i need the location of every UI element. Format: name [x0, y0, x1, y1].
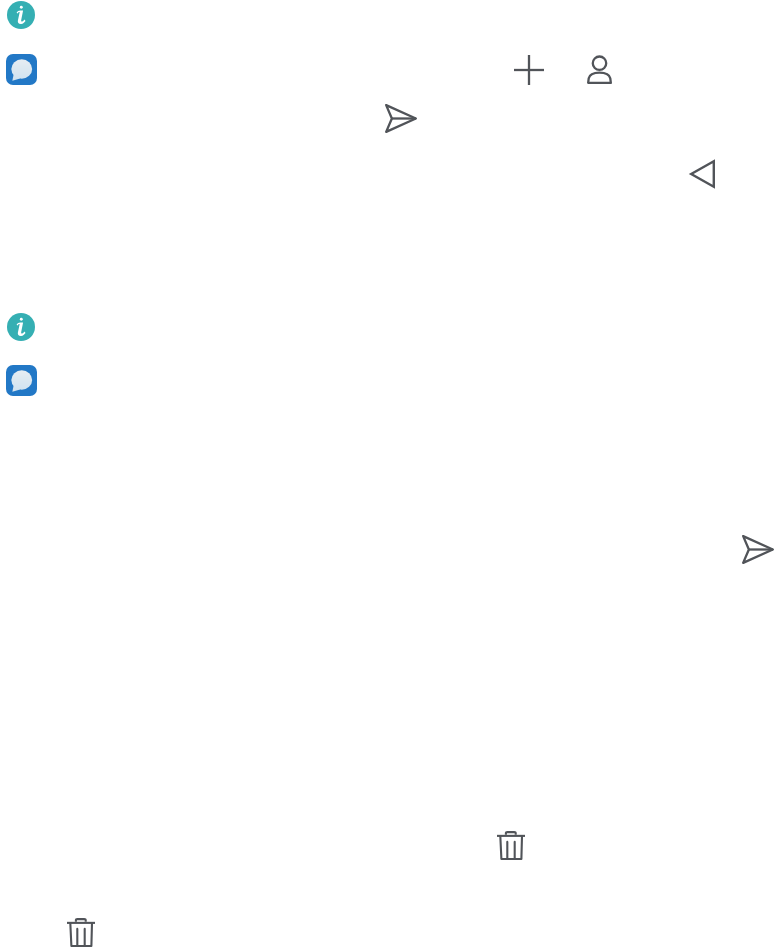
button[interactable]: Delete	[497, 831, 525, 860]
button[interactable]: Add	[514, 55, 544, 85]
button[interactable]: Messages	[6, 365, 37, 396]
button[interactable]: Account	[587, 55, 612, 84]
button[interactable]: Messages	[6, 54, 37, 85]
button[interactable]: Information	[7, 313, 35, 341]
button[interactable]: Delete	[67, 918, 95, 947]
button[interactable]: Send	[742, 535, 774, 564]
button[interactable]: Back	[690, 160, 715, 188]
button[interactable]: Information	[7, 1, 35, 29]
button[interactable]: Send	[385, 104, 417, 133]
